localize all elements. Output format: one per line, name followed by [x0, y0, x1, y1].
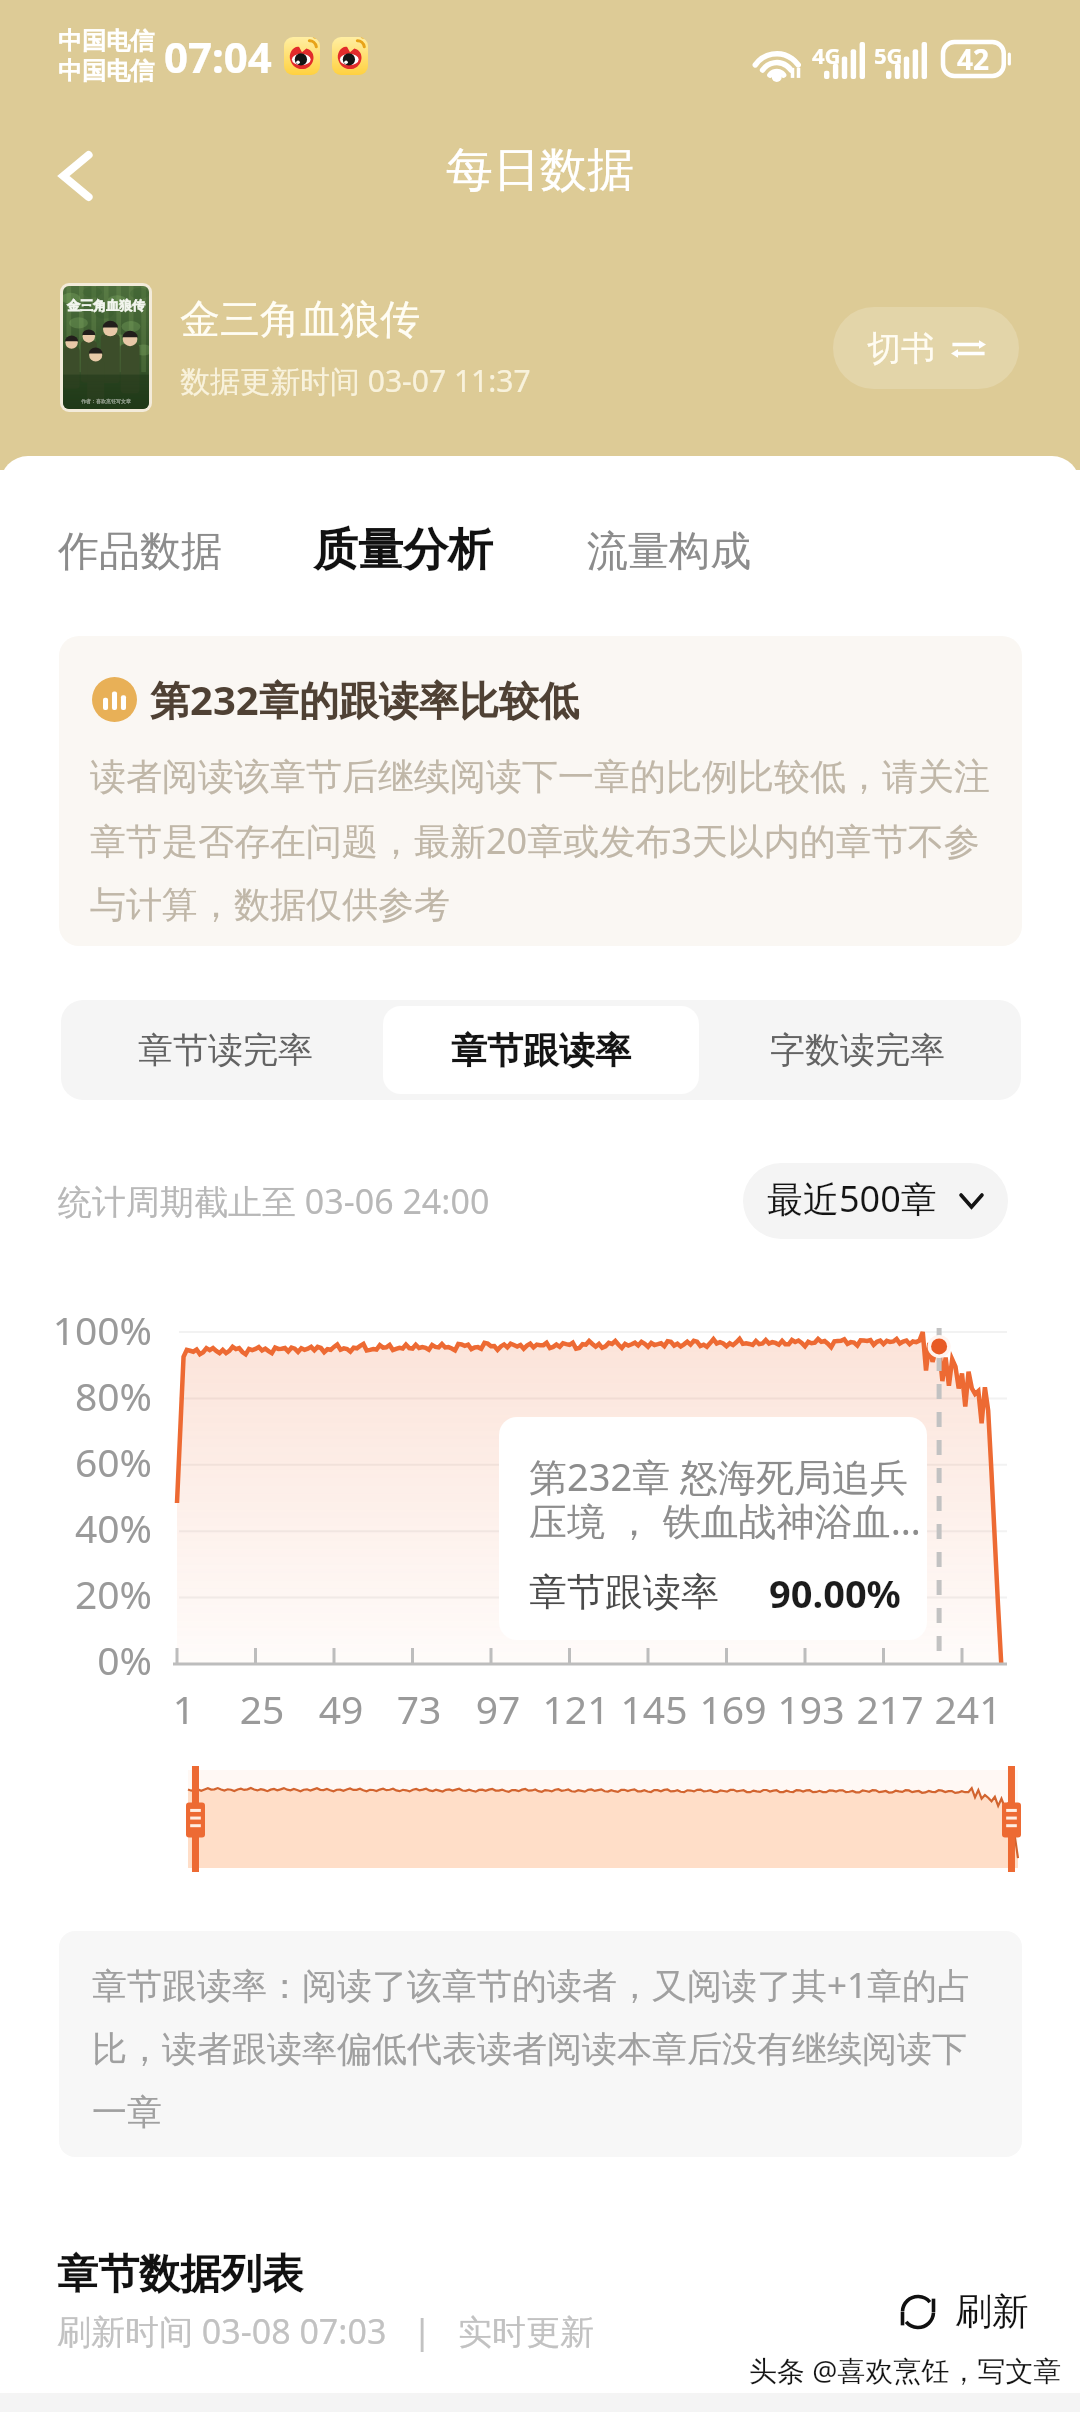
staticText: 07:04 — [164, 28, 272, 85]
staticText: 作品数据 — [58, 526, 222, 578]
staticText: 20% — [22, 1567, 152, 1620]
staticText: 刷新 — [955, 2288, 1029, 2335]
staticText: 第232章 怒海死局追兵 — [529, 1450, 909, 1502]
staticText: 作者：喜欢烹饪写文章 — [81, 398, 131, 404]
staticText: 169 — [688, 1682, 778, 1735]
staticText: 读者阅读该章节后继续阅读下一章的比例比较低，请关注章节是否存在问题，最新20章或… — [90, 754, 1006, 928]
staticText: 统计周期截止至 03-06 24:00 — [58, 1178, 490, 1224]
staticText: 90.00% — [769, 1567, 901, 1619]
staticText: 最近500章 — [767, 1174, 937, 1223]
staticText: 头条 @喜欢烹饪，写文章 — [749, 2351, 1062, 2389]
staticText: 刷新时间 03-08 07:03 | 实时更新 — [57, 2308, 595, 2354]
staticText: 49 — [296, 1682, 386, 1735]
staticText: 42 — [957, 40, 990, 78]
staticText: 241 — [923, 1682, 1013, 1735]
staticText: 97 — [453, 1682, 543, 1735]
staticText: 40% — [22, 1501, 152, 1554]
staticText: 金三角血狼传 — [180, 294, 420, 344]
staticText: 121 — [531, 1682, 621, 1735]
staticText: 217 — [845, 1682, 935, 1735]
staticText: 章节跟读率：阅读了该章节的读者，又阅读了其+1章的占比，读者跟读率偏低代表读者阅… — [92, 1961, 992, 2134]
staticText: 1 — [139, 1682, 229, 1735]
staticText: 80% — [22, 1369, 152, 1422]
staticText: 中国电信 — [58, 56, 154, 86]
staticText: 章节数据列表 — [57, 2249, 303, 2301]
staticText: 金三角血狼传 — [67, 297, 145, 313]
staticText: 压境 ， 铁血战神浴血… — [529, 1494, 921, 1546]
staticText: 193 — [766, 1682, 856, 1735]
staticText: 中国电信 — [58, 26, 154, 56]
staticText: 质量分析 — [313, 522, 493, 579]
staticText: 25 — [217, 1682, 307, 1735]
button[interactable]: 质量分析 — [297, 508, 509, 593]
staticText: 流量构成 — [587, 526, 751, 578]
staticText: 4G — [812, 40, 841, 70]
staticText: 第232章的跟读率比较低 — [150, 672, 579, 727]
staticText: 145 — [609, 1682, 699, 1735]
staticText: 字数读完率 — [770, 1028, 945, 1072]
staticText: 60% — [22, 1435, 152, 1488]
button[interactable]: 章节跟读率 — [383, 1006, 699, 1094]
button[interactable]: 流量构成 — [571, 512, 767, 592]
button[interactable]: 切书 — [833, 307, 1019, 389]
button[interactable]: 作品数据 — [42, 512, 238, 592]
staticText: 5G — [874, 40, 903, 70]
staticText: 章节读完率 — [138, 1028, 313, 1072]
button[interactable]: 章节读完率 — [67, 1006, 383, 1094]
staticText: 数据更新时间 03-07 11:37 — [180, 360, 531, 401]
button[interactable]: Back — [40, 140, 112, 212]
button[interactable]: 刷新 — [899, 2288, 1029, 2335]
button[interactable]: 最近500章 — [743, 1163, 1008, 1239]
staticText: 章节跟读率 — [529, 1568, 719, 1616]
staticText: 每日数据 — [446, 141, 634, 200]
button[interactable]: 字数读完率 — [699, 1006, 1015, 1094]
staticText: 0% — [22, 1633, 152, 1686]
staticText: 章节跟读率 — [451, 1028, 631, 1073]
staticText: 73 — [374, 1682, 464, 1735]
staticText: 切书 — [867, 327, 935, 370]
staticText: 100% — [22, 1303, 152, 1356]
